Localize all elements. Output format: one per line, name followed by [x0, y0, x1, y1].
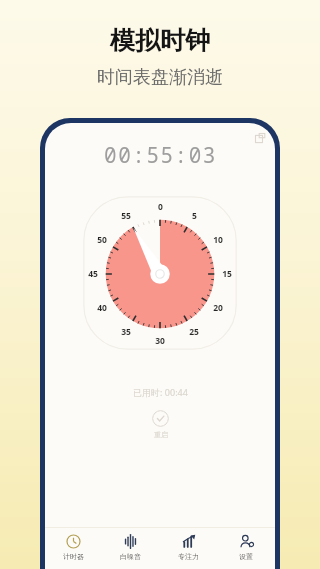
staticText: 25: [189, 326, 199, 338]
staticText: 模拟时钟: [110, 25, 210, 56]
button[interactable]: 重启: [150, 408, 171, 441]
other: 重启: [152, 410, 169, 427]
staticText: 白噪音: [120, 552, 141, 561]
staticText: 计时器: [63, 552, 84, 561]
button[interactable]: 专注力: [159, 528, 217, 569]
staticText: 专注力: [178, 552, 199, 561]
staticText: 20: [213, 302, 223, 314]
staticText: 10: [213, 234, 223, 246]
staticText: 时间表盘渐消逝: [97, 66, 223, 89]
staticText: 设置: [239, 552, 253, 561]
staticText: 35: [121, 326, 131, 338]
button[interactable]: 切换视图: [253, 131, 267, 145]
staticText: 15: [222, 268, 232, 280]
button[interactable]: 计时器: [45, 528, 102, 569]
staticText: 5: [192, 210, 197, 222]
staticText: 50: [97, 234, 107, 246]
staticText: 已用时: 00:44: [133, 386, 188, 398]
staticText: 30: [155, 335, 165, 347]
staticText: 0: [158, 201, 163, 213]
staticText: 00:55:03: [104, 141, 217, 170]
staticText: 55: [121, 210, 131, 222]
staticText: 重启: [154, 430, 168, 439]
staticText: 40: [97, 302, 107, 314]
button[interactable]: 白噪音: [102, 528, 159, 569]
button[interactable]: 设置: [217, 528, 275, 569]
staticText: 45: [88, 268, 98, 280]
other: 切换视图: [255, 133, 265, 143]
